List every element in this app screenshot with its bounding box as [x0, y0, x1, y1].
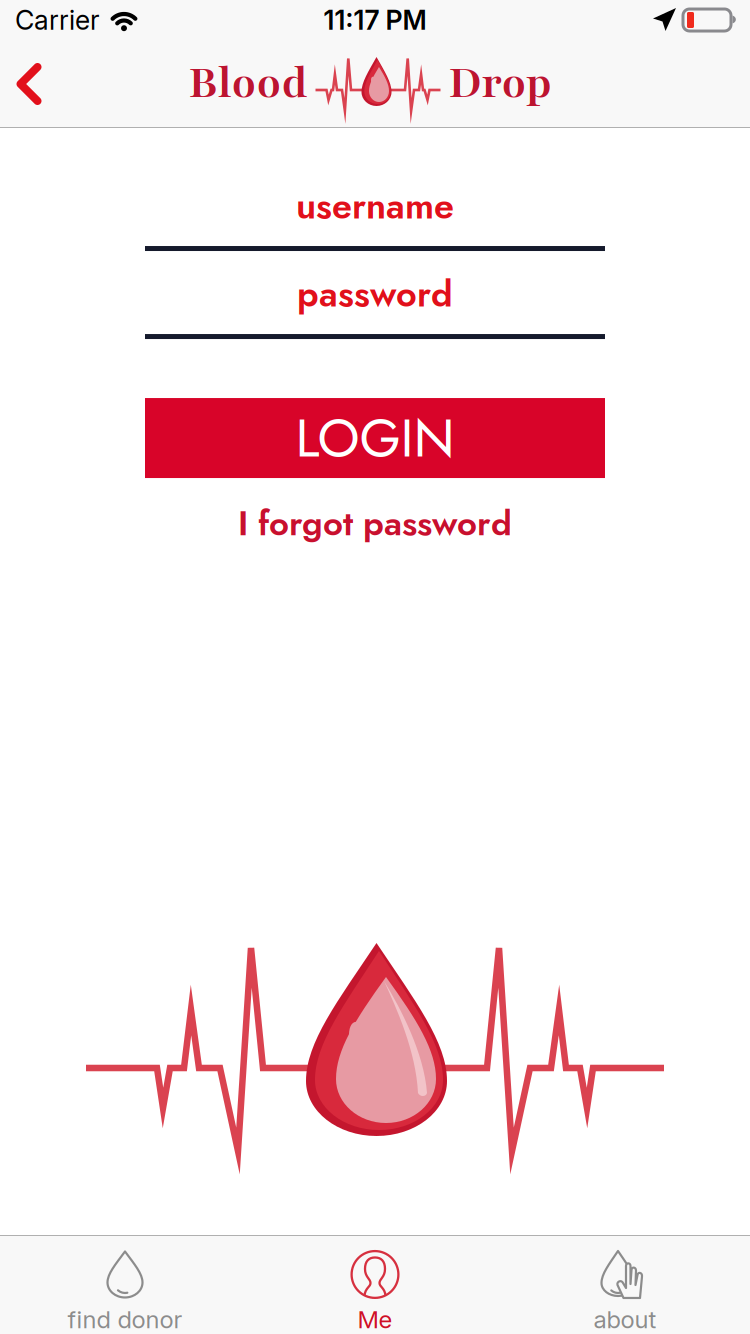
staticText: find donor: [67, 1305, 182, 1334]
button[interactable]: Back: [0, 45, 62, 123]
staticText: username: [296, 180, 454, 232]
staticText: I forgot password: [238, 498, 512, 548]
staticText: password: [297, 268, 453, 320]
staticText: 11:17 PM: [323, 4, 426, 36]
button[interactable]: find donor: [0, 1230, 250, 1334]
button[interactable]: about: [500, 1230, 750, 1334]
staticText: LOGIN: [295, 399, 454, 477]
staticText: Me: [357, 1305, 392, 1334]
button[interactable]: I forgot password: [218, 490, 532, 556]
staticText: about: [593, 1305, 656, 1334]
staticText: Blood: [188, 53, 307, 113]
staticText: Drop: [448, 53, 551, 113]
staticText: Carrier: [15, 4, 100, 36]
button[interactable]: LOGIN: [145, 398, 605, 478]
button[interactable]: Me: [250, 1230, 500, 1334]
